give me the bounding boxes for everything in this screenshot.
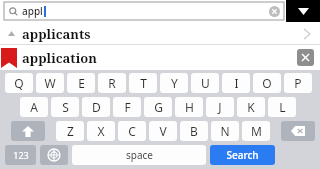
button[interactable]: Z [56,121,84,141]
staticText: S [62,99,69,115]
staticText: I [234,75,239,91]
staticText: E [78,75,85,91]
button[interactable]: Change keyboard [40,145,68,165]
staticText: A [30,99,38,115]
button[interactable]: B [180,121,208,141]
button[interactable]: applicants [0,22,320,45]
staticText: O [262,75,272,91]
staticText: L [279,99,286,115]
button[interactable]: C [118,121,146,141]
staticText: U [201,75,210,91]
button[interactable]: Close [297,49,314,66]
staticText: X [97,123,105,139]
button[interactable]: Q [5,73,33,93]
button[interactable]: L [268,97,296,117]
staticText: B [190,123,198,139]
staticText: V [159,123,167,139]
button[interactable]: G [144,97,172,117]
button[interactable]: N [211,121,239,141]
button[interactable]: M [242,121,270,141]
staticText: M [251,123,262,139]
button[interactable]: H [175,97,203,117]
staticText: P [294,75,302,91]
staticText: application [22,49,97,67]
button[interactable]: appl [4,2,284,20]
staticText: applicants [22,25,91,43]
staticText: H [185,99,194,115]
button[interactable]: D [82,97,110,117]
button[interactable]: I [222,73,250,93]
button[interactable]: R [98,73,126,93]
button[interactable]: F [113,97,141,117]
staticText: appl [22,4,43,18]
button[interactable]: Y [160,73,188,93]
staticText: Z [67,123,74,139]
staticText: C [128,123,136,139]
button[interactable]: K [237,97,265,117]
staticText: Q [14,75,24,91]
button[interactable]: Shift [11,121,45,141]
button[interactable]: Show options [286,0,320,22]
button[interactable]: X [87,121,115,141]
button[interactable]: 123 [5,145,36,165]
staticText: Search [226,148,259,162]
staticText: J [218,99,222,115]
staticText: N [220,123,230,139]
staticText: G [154,99,163,115]
button[interactable]: P [284,73,312,93]
button[interactable]: V [149,121,177,141]
button[interactable]: O [253,73,281,93]
button[interactable]: Search [210,145,275,165]
button[interactable]: S [51,97,79,117]
staticText: D [92,99,101,115]
staticText: W [44,75,56,91]
staticText: 123 [13,149,29,161]
staticText: F [124,99,131,115]
button[interactable]: W [36,73,64,93]
staticText: K [247,99,255,115]
staticText: T [140,75,147,91]
button[interactable]: J [206,97,234,117]
button[interactable]: application [0,45,320,70]
button[interactable]: A [20,97,48,117]
staticText: Y [171,75,178,91]
button[interactable]: space [72,145,206,165]
button[interactable]: E [67,73,95,93]
staticText: space [126,148,153,162]
button[interactable]: Clear search [269,6,280,17]
button[interactable]: T [129,73,157,93]
button[interactable]: U [191,73,219,93]
staticText: R [108,75,116,91]
button[interactable]: Backspace [281,121,315,141]
